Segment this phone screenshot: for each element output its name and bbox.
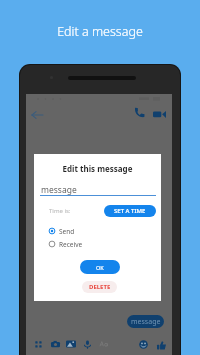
button[interactable]: Text format [97,337,111,351]
button[interactable]: DELETE [82,281,117,293]
button[interactable]: Receive [46,238,104,250]
staticText: Receive [59,240,83,249]
staticText: Edit this message [34,163,161,174]
staticText: SET A TIME [114,207,146,215]
staticText: message [131,317,161,327]
button[interactable]: Back [28,106,45,123]
button[interactable]: Send [46,225,104,237]
button[interactable]: Call [133,106,146,119]
button[interactable]: OK [80,260,120,274]
button[interactable]: message [127,315,164,328]
button[interactable]: Microphone [80,337,94,351]
staticText: Send [59,227,75,236]
staticText: DELETE [89,283,111,291]
staticText: Time is: [49,207,71,215]
button[interactable]: Camera [48,337,62,351]
button[interactable]: Emoji [136,337,150,351]
button[interactable]: SET A TIME [104,205,156,217]
button[interactable]: Video call [152,107,166,121]
button[interactable]: Like [154,338,168,352]
staticText: message [41,184,77,196]
staticText: OK [96,264,104,271]
staticText: Edit a message [0,23,200,40]
button[interactable]: Gallery [64,337,78,351]
button[interactable]: Apps [31,337,45,351]
